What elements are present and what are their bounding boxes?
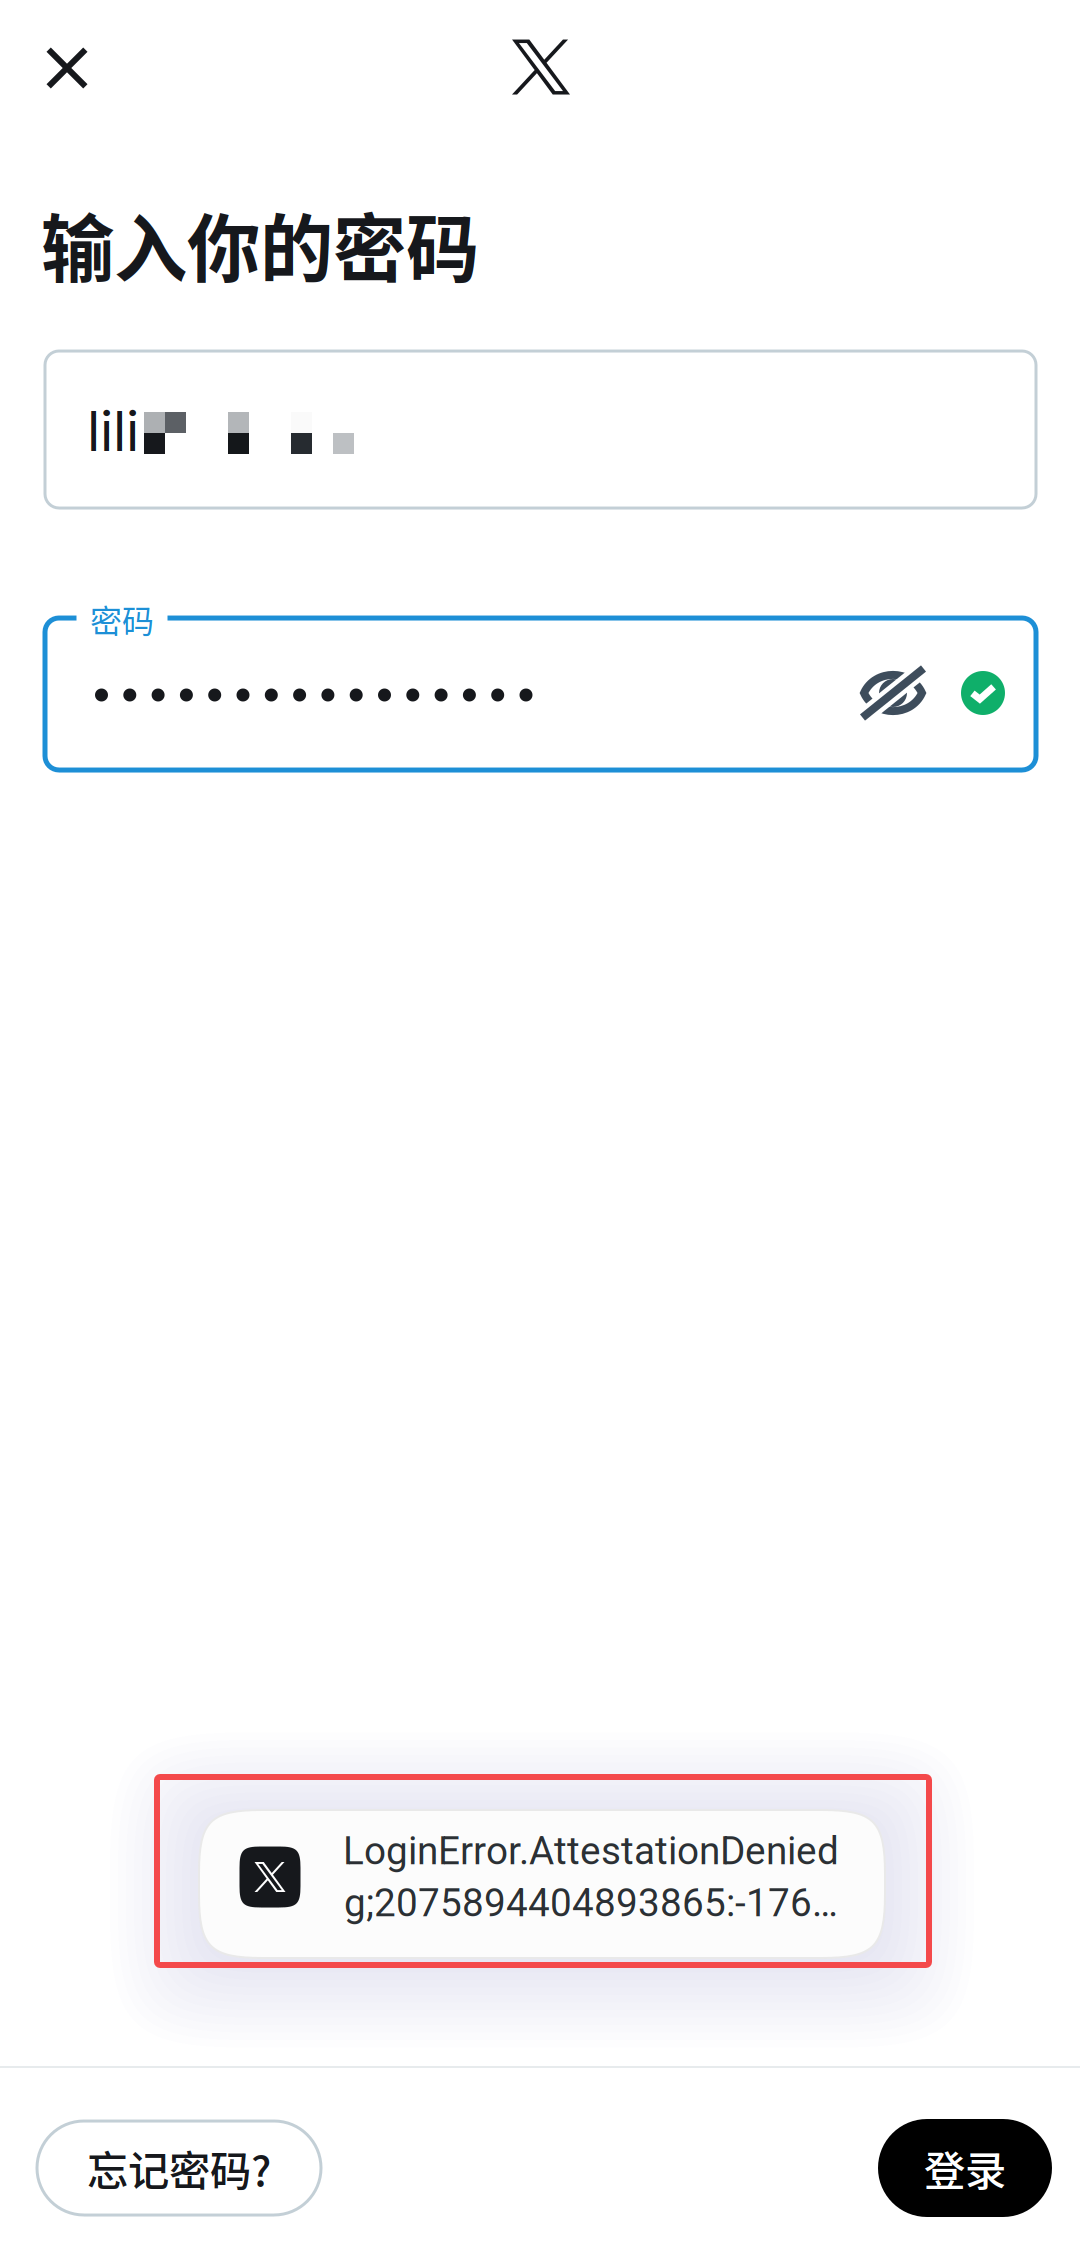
staticText: 登录	[924, 2138, 1006, 2198]
button[interactable]: Show password	[847, 647, 939, 739]
button[interactable]: 忘记密码?	[37, 2121, 321, 2215]
staticText: lili	[87, 398, 139, 464]
button[interactable]: 登录	[878, 2119, 1052, 2217]
staticText: 密码	[90, 596, 154, 642]
staticText: 输入你的密码	[41, 191, 479, 297]
staticText: 忘记密码?	[87, 2138, 271, 2198]
staticText: g;2075894404893865:-176…	[344, 1880, 838, 1926]
button[interactable]: Username	[45, 351, 1036, 508]
staticText: LoginError.AttestationDenied	[343, 1828, 839, 1874]
button[interactable]: Close	[15, 16, 119, 120]
